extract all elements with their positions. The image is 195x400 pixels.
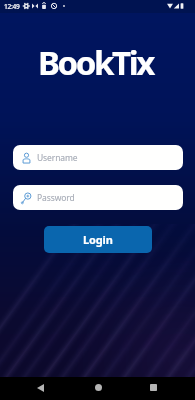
button[interactable]: Login — [44, 226, 152, 253]
staticText: Login — [83, 232, 113, 247]
button[interactable]: Username — [13, 145, 183, 170]
button[interactable]: Home — [83, 376, 113, 399]
staticText: 12:49 — [4, 2, 20, 11]
staticText: BookTix — [38, 40, 153, 85]
staticText: Username — [37, 152, 78, 164]
staticText: Password — [37, 192, 75, 204]
button[interactable]: Recents — [138, 376, 168, 399]
button[interactable]: Back — [25, 376, 55, 399]
button[interactable]: Password — [13, 185, 183, 210]
